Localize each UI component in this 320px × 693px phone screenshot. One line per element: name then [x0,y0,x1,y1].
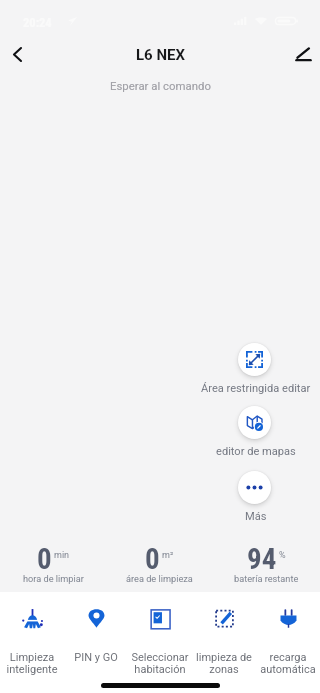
button[interactable] [238,343,271,376]
staticText: área de limpieza [126,573,193,584]
staticText: recarga automática [256,651,320,676]
button[interactable]: Back [0,36,36,72]
staticText: Esperar al comando [110,79,211,92]
staticText: limpieza de zonas [192,651,256,676]
button[interactable]: Edit [284,36,320,72]
staticText: min [54,550,70,561]
button[interactable]: limpieza de zonas [192,592,256,617]
staticText: Más [245,510,267,523]
staticText: Seleccionar habitación [128,651,192,676]
staticText: hora de limpiar [23,573,84,584]
staticText: editor de mapas [216,445,296,458]
button[interactable]: PIN y GO [64,592,128,613]
staticText: Limpieza inteligente [0,651,64,676]
staticText: % [279,550,286,561]
button[interactable] [238,471,271,504]
button[interactable]: recarga automática [256,592,320,617]
staticText: L6 NEX [136,46,185,64]
button[interactable] [238,406,271,439]
staticText: 0 [37,542,52,576]
staticText: PIN y GO [64,651,128,664]
staticText: 94 [247,542,277,576]
button[interactable]: Limpieza inteligente [0,592,64,617]
staticText: batería restante [234,573,299,584]
staticText: 0 [145,542,160,576]
staticText: Área restringida editar [201,382,311,395]
button[interactable]: Seleccionar habitación [128,592,192,617]
staticText: m² [162,550,174,561]
